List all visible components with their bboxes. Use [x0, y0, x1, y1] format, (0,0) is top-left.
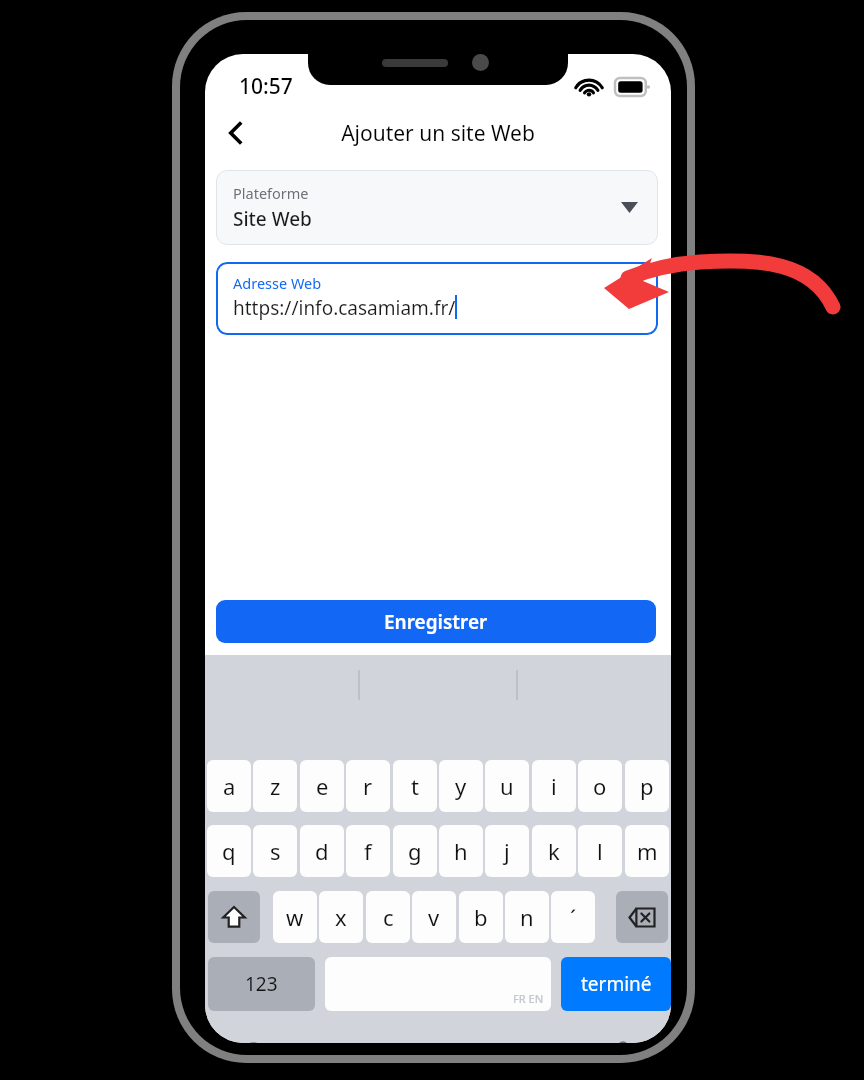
staticText: a [223, 771, 236, 801]
button[interactable]: w [273, 891, 317, 943]
staticText: q [222, 836, 236, 866]
staticText: ´ [570, 902, 577, 932]
button[interactable]: Emoji [233, 1035, 273, 1043]
staticText: https://info.casamiam.fr/ [233, 295, 456, 321]
button[interactable]: r [346, 760, 390, 812]
button[interactable]: Shift [208, 891, 260, 943]
staticText: u [500, 771, 514, 801]
staticText: p [640, 771, 654, 801]
button[interactable]: z [253, 760, 297, 812]
staticText: FR EN [513, 991, 544, 1006]
staticText: k [548, 836, 560, 866]
button[interactable]: e [300, 760, 344, 812]
staticText: j [504, 836, 510, 866]
staticText: v [428, 902, 440, 932]
staticText: n [520, 902, 534, 932]
staticText: x [335, 902, 347, 932]
staticText: 123 [245, 971, 278, 997]
button[interactable]: t [393, 760, 437, 812]
staticText: f [364, 836, 372, 866]
button[interactable]: Back [211, 108, 261, 158]
button[interactable]: g [393, 825, 437, 877]
button[interactable]: o [578, 760, 622, 812]
button[interactable]: p [625, 760, 669, 812]
button[interactable]: ´ [551, 891, 595, 943]
button[interactable]: terminé [561, 957, 671, 1011]
staticText: h [454, 836, 468, 866]
button[interactable]: x [319, 891, 363, 943]
staticText: w [286, 902, 304, 932]
staticText: l [597, 836, 603, 866]
button[interactable]: Dictation [603, 1035, 643, 1043]
button[interactable]: b [459, 891, 503, 943]
staticText: 10:57 [239, 72, 293, 101]
button[interactable]: l [578, 825, 622, 877]
staticText: o [593, 771, 607, 801]
staticText: i [551, 771, 557, 801]
staticText: Plateforme [233, 183, 309, 203]
staticText: Ajouter un site Web [341, 119, 535, 148]
staticText: Adresse Web [233, 273, 322, 293]
button[interactable]: 123 [208, 957, 315, 1011]
button[interactable]: Backspace [616, 891, 668, 943]
staticText: g [408, 836, 422, 866]
button[interactable]: a [207, 760, 251, 812]
button[interactable]: d [300, 825, 344, 877]
button[interactable]: k [532, 825, 576, 877]
button[interactable]: Adresse Web [216, 262, 658, 335]
button[interactable]: Space [325, 957, 551, 1011]
staticText: s [270, 836, 281, 866]
button[interactable]: y [439, 760, 483, 812]
staticText: r [363, 771, 373, 801]
staticText: c [383, 902, 394, 932]
button[interactable]: m [625, 825, 669, 877]
staticText: m [637, 836, 658, 866]
button[interactable]: v [412, 891, 456, 943]
button[interactable]: j [485, 825, 529, 877]
staticText: t [411, 771, 419, 801]
button[interactable]: u [485, 760, 529, 812]
button[interactable]: h [439, 825, 483, 877]
button[interactable]: f [346, 825, 390, 877]
staticText: b [474, 902, 488, 932]
staticText: terminé [581, 971, 652, 997]
button[interactable]: Enregistrer [216, 600, 656, 643]
staticText: e [316, 771, 329, 801]
button[interactable]: Plateforme [216, 170, 658, 245]
staticText: z [270, 771, 281, 801]
button[interactable]: s [253, 825, 297, 877]
button[interactable]: c [366, 891, 410, 943]
button[interactable]: n [505, 891, 549, 943]
staticText: Site Web [233, 206, 312, 232]
staticText: y [455, 771, 467, 801]
staticText: Enregistrer [384, 609, 488, 635]
button[interactable]: i [532, 760, 576, 812]
staticText: d [315, 836, 329, 866]
button[interactable]: q [207, 825, 251, 877]
